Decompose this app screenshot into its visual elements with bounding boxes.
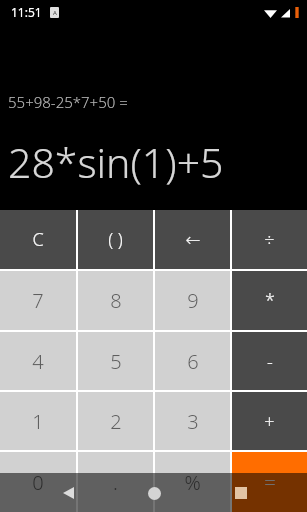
button[interactable]: 4 — [0, 332, 76, 390]
staticText: % — [184, 469, 201, 496]
button[interactable]: Recents — [225, 477, 257, 509]
staticText: ← — [185, 229, 201, 250]
staticText: 2 — [110, 408, 122, 435]
staticText: 8 — [110, 287, 122, 314]
staticText: + — [264, 409, 275, 434]
button[interactable]: Home — [138, 477, 170, 509]
button[interactable]: 7 — [0, 271, 76, 330]
staticText: . — [113, 469, 118, 496]
staticText: 9 — [187, 287, 199, 314]
button[interactable]: 9 — [155, 271, 230, 330]
staticText: 28*sin(1)+5 — [8, 134, 224, 190]
staticText: 55+98-25*7+50 = — [8, 92, 128, 112]
staticText: 3 — [187, 408, 199, 435]
button[interactable]: 6 — [155, 332, 230, 390]
staticText: 4 — [32, 348, 44, 375]
button[interactable]: ( ) — [78, 210, 153, 269]
staticText: 1 — [32, 408, 44, 435]
button[interactable]: 1 — [0, 392, 76, 450]
button[interactable]: C — [0, 210, 76, 269]
button[interactable]: + — [232, 392, 307, 450]
button[interactable]: % — [155, 452, 230, 512]
staticText: 11:51 — [11, 4, 42, 20]
button[interactable]: = — [232, 452, 307, 512]
button[interactable]: 8 — [78, 271, 153, 330]
staticText: 7 — [32, 287, 44, 314]
button[interactable]: 0 — [0, 452, 76, 512]
staticText: A — [53, 9, 57, 17]
staticText: ( ) — [108, 227, 123, 252]
button[interactable]: * — [232, 271, 307, 330]
staticText: 5 — [110, 348, 122, 375]
staticText: * — [265, 288, 275, 313]
button[interactable]: 3 — [155, 392, 230, 450]
button[interactable]: ÷ — [232, 210, 307, 269]
staticText: ÷ — [264, 227, 275, 252]
button[interactable]: . — [78, 452, 153, 512]
staticText: 0 — [32, 469, 44, 496]
staticText: = — [264, 469, 276, 496]
button[interactable]: 5 — [78, 332, 153, 390]
button[interactable]: 2 — [78, 392, 153, 450]
button[interactable]: - — [232, 332, 307, 390]
staticText: C — [32, 227, 44, 252]
staticText: - — [267, 349, 273, 374]
staticText: 6 — [187, 348, 199, 375]
button[interactable]: ← — [155, 210, 230, 269]
button[interactable]: Back — [52, 477, 84, 509]
